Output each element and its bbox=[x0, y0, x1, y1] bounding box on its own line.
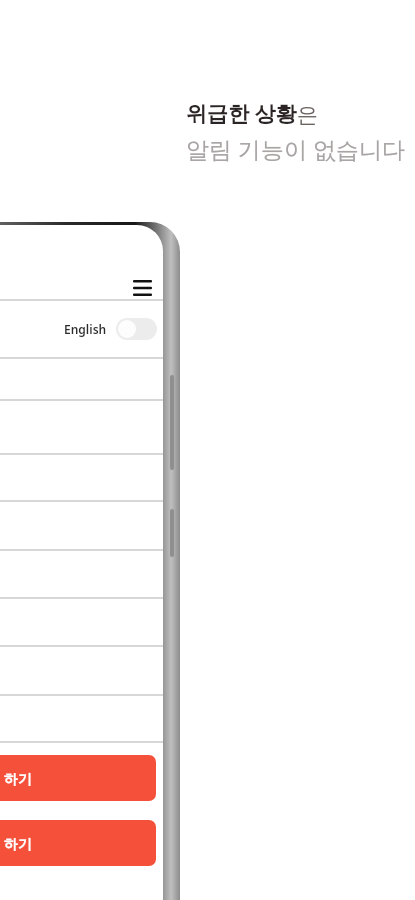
button[interactable]: Menu bbox=[127, 277, 157, 299]
button[interactable]: English bbox=[64, 318, 157, 340]
staticText: 응급전화 하기 bbox=[0, 834, 32, 853]
button[interactable]: 긴급전화 하기 bbox=[0, 755, 156, 801]
button[interactable]: 응급전화 하기 bbox=[0, 820, 156, 866]
staticText: 알림 기능이 없습니다 bbox=[186, 133, 405, 164]
staticText: 은 bbox=[297, 102, 318, 128]
staticText: English bbox=[64, 321, 107, 337]
staticText: 긴급전화 하기 bbox=[0, 769, 32, 788]
staticText: 위급한 상황 bbox=[186, 99, 297, 128]
